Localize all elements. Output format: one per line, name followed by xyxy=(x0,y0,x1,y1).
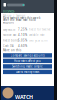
staticText: 7.25% xyxy=(18,28,27,31)
staticText: Best savings rates this week xyxy=(3,16,40,20)
staticText: 5.05% xyxy=(18,39,27,42)
staticText: Switching made simple xyxy=(12,65,43,68)
button[interactable]: Latest money news xyxy=(3,70,52,74)
staticText: 4.60% xyxy=(18,44,27,48)
staticText: Compare savings accounts xyxy=(10,54,44,57)
staticText: BUSINESS xyxy=(3,10,14,13)
staticText: Fixed bond xyxy=(3,39,19,42)
staticText: Latest money news xyxy=(16,70,39,74)
staticText: 4.10% xyxy=(18,33,27,37)
staticText: Easy access xyxy=(3,28,15,31)
staticText: variable rate xyxy=(29,33,45,37)
staticText: after the base rate hold xyxy=(3,18,36,22)
staticText: Cash ISA xyxy=(3,44,14,48)
staticText: WATCH xyxy=(15,93,33,100)
staticText: fixed for twelve xyxy=(29,28,51,31)
staticText: two year term xyxy=(29,39,47,42)
staticText: How rates affect you xyxy=(14,59,41,63)
button[interactable]: Switching made simple xyxy=(3,64,52,69)
staticText: Money | Savings xyxy=(3,14,25,17)
staticText: Account xyxy=(3,21,14,24)
button[interactable]: Compare savings accounts xyxy=(3,53,52,58)
staticText: Notice acc xyxy=(3,33,16,37)
staticText: More on this xyxy=(3,48,21,52)
button[interactable]: How rates affect you xyxy=(3,59,52,63)
